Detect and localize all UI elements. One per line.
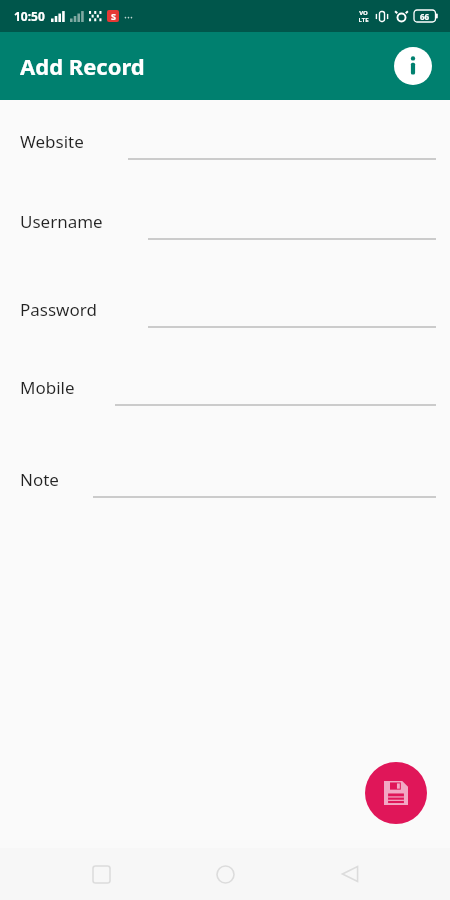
button[interactable]: Save record (365, 762, 427, 824)
button[interactable]: Recent apps (77, 850, 125, 898)
button[interactable]: Note (0, 468, 450, 502)
staticText: Note (20, 468, 59, 491)
staticText: Add Record (20, 51, 145, 81)
button[interactable]: Home (201, 850, 249, 898)
button[interactable]: Back (326, 850, 374, 898)
staticText: Password (20, 298, 97, 321)
button[interactable]: Info (392, 45, 434, 87)
button[interactable]: Mobile (0, 376, 450, 410)
staticText: Username (20, 210, 103, 233)
button[interactable]: Username (0, 210, 450, 244)
staticText: ··· (124, 9, 133, 24)
staticText: Website (20, 130, 84, 153)
staticText: S (111, 10, 116, 22)
staticText: VO LTE (358, 9, 369, 23)
staticText: 10:50 (14, 8, 45, 24)
button[interactable]: Password (0, 298, 450, 332)
button[interactable]: Website (0, 130, 450, 164)
staticText: 66 (420, 11, 430, 22)
staticText: Mobile (20, 376, 75, 399)
